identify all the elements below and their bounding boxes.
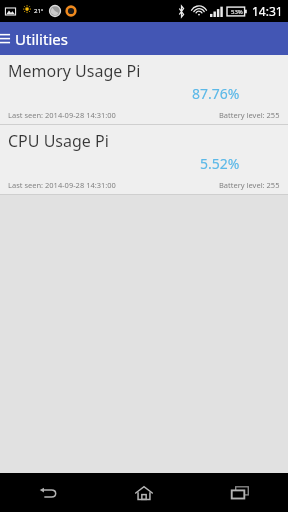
staticText: Battery level: 255 — [219, 110, 280, 120]
staticText: Last seen: 2014-09-28 14:31:00 — [8, 110, 116, 120]
staticText: 87.76% — [192, 84, 240, 103]
staticText: 21° — [34, 7, 44, 15]
button[interactable]: Home — [96, 473, 192, 512]
button[interactable]: CPU Usage Pi — [0, 125, 288, 194]
staticText: 14:31 — [252, 3, 283, 19]
button[interactable]: Back — [0, 473, 96, 512]
staticText: 53% — [231, 8, 243, 16]
button[interactable]: Memory Usage Pi — [0, 55, 288, 124]
staticText: 5.52% — [200, 154, 240, 173]
staticText: Memory Usage Pi — [8, 60, 141, 82]
staticText: CPU Usage Pi — [8, 130, 109, 152]
button[interactable]: Recent apps — [192, 473, 288, 512]
staticText: Utilities — [15, 29, 68, 49]
button[interactable]: Open navigation drawer — [0, 22, 18, 55]
staticText: Last seen: 2014-09-28 14:31:00 — [8, 180, 116, 190]
staticText: Battery level: 255 — [219, 180, 280, 190]
